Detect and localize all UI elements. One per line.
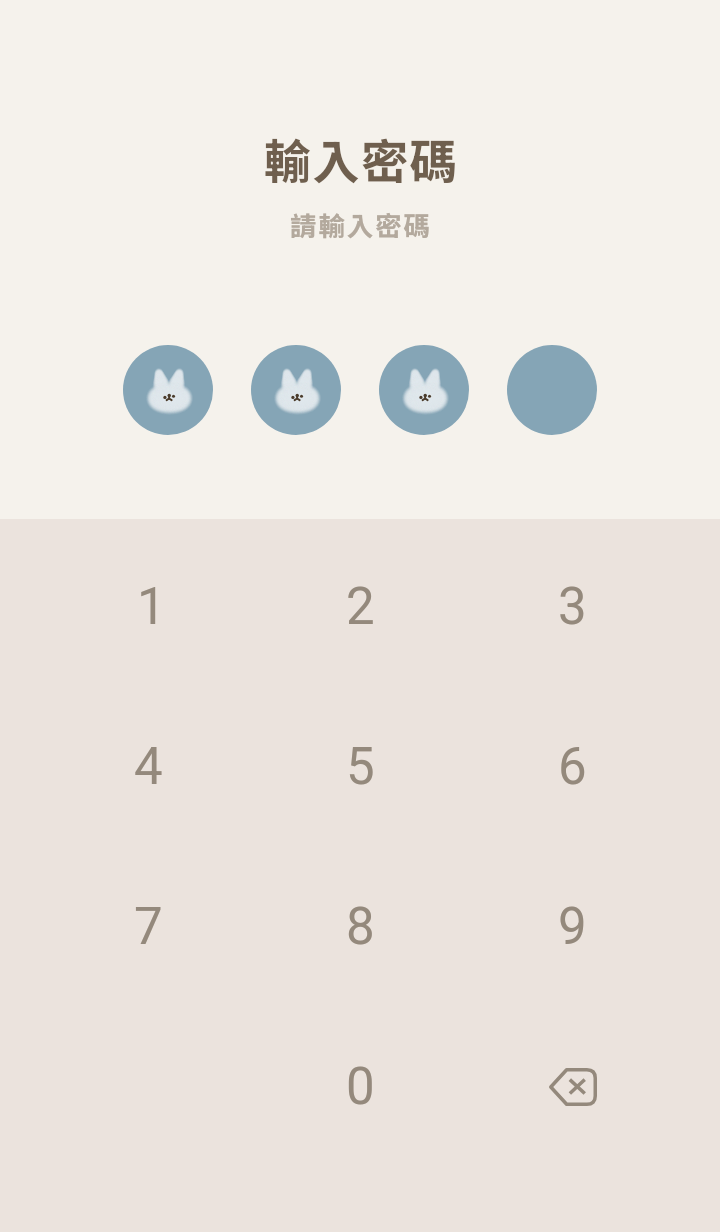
staticText: 5	[346, 737, 375, 797]
staticText: 輸入密碼	[264, 124, 458, 192]
button[interactable]: 0	[254, 1007, 466, 1167]
staticText: 9	[558, 897, 587, 957]
staticText: 3	[558, 577, 587, 637]
staticText: 0	[346, 1057, 375, 1117]
button[interactable]: 6	[466, 687, 678, 847]
button[interactable]: Delete	[466, 1007, 678, 1167]
staticText: 請輸入密碼	[290, 205, 432, 243]
staticText: 4	[134, 737, 163, 797]
button[interactable]: 3	[466, 527, 678, 687]
staticText: 1	[137, 577, 166, 637]
button[interactable]: 4	[42, 687, 254, 847]
button[interactable]: 7	[42, 847, 254, 1007]
staticText: 6	[558, 737, 587, 797]
staticText: 2	[346, 577, 375, 637]
button[interactable]: 1	[42, 527, 254, 687]
staticText: 7	[134, 897, 163, 957]
button[interactable]: 5	[254, 687, 466, 847]
staticText: 8	[346, 897, 375, 957]
button[interactable]: 8	[254, 847, 466, 1007]
button[interactable]: 9	[466, 847, 678, 1007]
button[interactable]: 2	[254, 527, 466, 687]
